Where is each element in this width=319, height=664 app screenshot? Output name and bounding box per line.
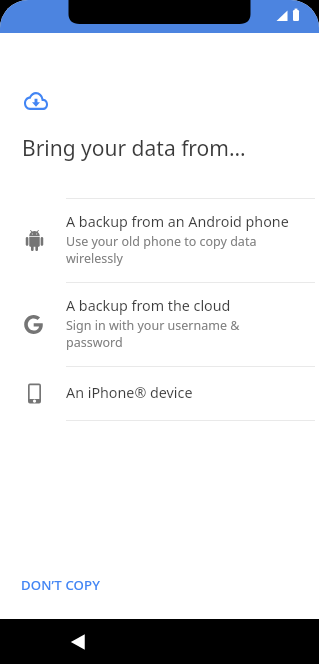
staticText: DON’T COPY (21, 576, 100, 594)
staticText: Sign in with your username & password (66, 317, 293, 350)
staticText: A backup from an Android phone (66, 212, 289, 231)
button[interactable]: A backup from the cloud (0, 283, 319, 366)
staticText: Bring your data from… (22, 134, 246, 163)
button[interactable]: DON’T COPY (13, 568, 108, 602)
staticText: An iPhone® device (66, 383, 193, 402)
button[interactable]: An iPhone® device (0, 367, 319, 420)
staticText: Use your old phone to copy data wireless… (66, 233, 293, 266)
button[interactable]: A backup from an Android phone (0, 199, 319, 282)
staticText: A backup from the cloud (66, 296, 231, 315)
button[interactable]: Back (62, 625, 96, 659)
